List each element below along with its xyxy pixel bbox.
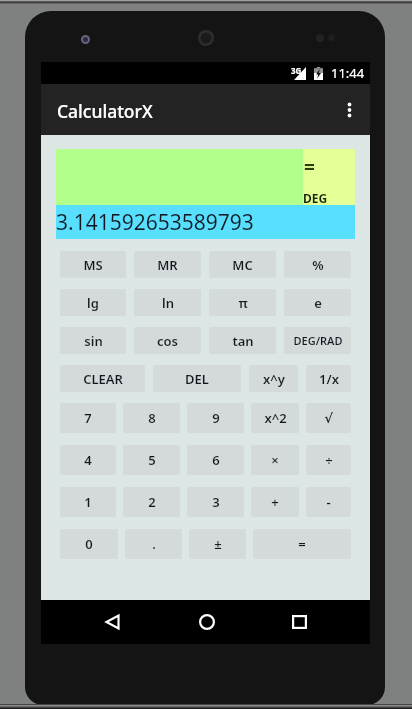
button[interactable]: x^y bbox=[249, 365, 298, 392]
button[interactable]: 5 bbox=[123, 445, 180, 475]
button[interactable]: × bbox=[251, 445, 299, 475]
button[interactable]: + bbox=[251, 487, 299, 517]
button[interactable]: 6 bbox=[187, 445, 244, 475]
button[interactable]: MS bbox=[60, 251, 126, 278]
staticText: MR bbox=[157, 256, 178, 274]
button[interactable]: = bbox=[253, 529, 351, 559]
staticText: 4 bbox=[84, 451, 92, 469]
button[interactable]: More options bbox=[328, 84, 370, 135]
staticText: ln bbox=[162, 294, 174, 312]
button[interactable]: ± bbox=[189, 529, 246, 559]
staticText: sin bbox=[84, 332, 103, 350]
button[interactable]: lg bbox=[60, 289, 126, 316]
button[interactable]: 1/x bbox=[306, 365, 351, 392]
staticText: 3 bbox=[212, 493, 220, 511]
staticText: x^y bbox=[263, 370, 285, 388]
button[interactable]: 0 bbox=[60, 529, 118, 559]
staticText: x^2 bbox=[264, 409, 287, 427]
button[interactable]: 3 bbox=[187, 487, 244, 517]
staticText: 8 bbox=[148, 409, 156, 427]
button[interactable]: √ bbox=[306, 403, 351, 433]
button[interactable]: 1 bbox=[60, 487, 116, 517]
button[interactable]: e bbox=[284, 289, 351, 316]
button[interactable]: 7 bbox=[60, 403, 116, 433]
staticText: . bbox=[152, 535, 156, 553]
staticText: DEL bbox=[185, 370, 209, 388]
button[interactable]: Back bbox=[87, 600, 135, 644]
staticText: DEG/RAD bbox=[293, 333, 343, 348]
staticText: √ bbox=[324, 411, 333, 426]
staticText: 5 bbox=[148, 451, 156, 469]
staticText: MC bbox=[232, 256, 253, 274]
button[interactable]: x^2 bbox=[251, 403, 299, 433]
button[interactable]: 8 bbox=[123, 403, 180, 433]
staticText: 6 bbox=[212, 451, 220, 469]
staticText: = bbox=[304, 154, 315, 180]
staticText: ± bbox=[214, 535, 222, 553]
button[interactable]: π bbox=[209, 289, 276, 316]
button[interactable]: 4 bbox=[60, 445, 116, 475]
staticText: % bbox=[312, 256, 324, 274]
staticText: 9 bbox=[212, 409, 220, 427]
staticText: cos bbox=[157, 332, 178, 350]
button[interactable]: - bbox=[306, 487, 351, 517]
button[interactable]: MR bbox=[134, 251, 201, 278]
staticText: e bbox=[314, 294, 322, 312]
button[interactable]: MC bbox=[209, 251, 276, 278]
button[interactable]: Home bbox=[182, 600, 230, 644]
button[interactable]: = bbox=[303, 149, 355, 205]
staticText: 2 bbox=[148, 493, 156, 511]
button[interactable]: tan bbox=[209, 327, 276, 354]
button[interactable]: DEG/RAD bbox=[284, 327, 351, 354]
staticText: × bbox=[271, 451, 279, 469]
button[interactable]: CLEAR bbox=[60, 365, 145, 392]
button[interactable]: 2 bbox=[123, 487, 180, 517]
button[interactable]: DEL bbox=[153, 365, 241, 392]
button[interactable]: cos bbox=[134, 327, 201, 354]
button[interactable]: . bbox=[125, 529, 182, 559]
staticText: lg bbox=[87, 294, 99, 312]
staticText: 1 bbox=[84, 493, 92, 511]
staticText: 1/x bbox=[319, 370, 339, 388]
staticText: + bbox=[271, 493, 279, 511]
staticText: CLEAR bbox=[83, 370, 123, 388]
staticText: CalculatorX bbox=[57, 99, 153, 123]
button[interactable]: sin bbox=[60, 327, 126, 354]
staticText: ÷ bbox=[325, 451, 333, 469]
staticText: π bbox=[238, 294, 248, 312]
staticText: - bbox=[326, 493, 331, 511]
button[interactable]: Recents bbox=[276, 600, 324, 644]
staticText: 3G bbox=[291, 65, 302, 76]
staticText: DEG bbox=[303, 190, 328, 206]
button[interactable]: ÷ bbox=[306, 445, 351, 475]
staticText: tan bbox=[232, 332, 254, 350]
button[interactable]: 3.141592653589793 bbox=[56, 205, 355, 239]
staticText: 3.141592653589793 bbox=[56, 208, 254, 237]
staticText: 0 bbox=[85, 535, 93, 553]
staticText: 11:44 bbox=[331, 64, 365, 82]
button[interactable]: 9 bbox=[187, 403, 244, 433]
staticText: MS bbox=[83, 256, 103, 274]
staticText: 7 bbox=[84, 409, 92, 427]
button[interactable]: % bbox=[284, 251, 351, 278]
staticText: = bbox=[298, 535, 306, 553]
button[interactable]: ln bbox=[134, 289, 201, 316]
